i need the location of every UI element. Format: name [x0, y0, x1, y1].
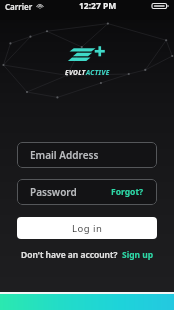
- staticText: Log in: [72, 222, 103, 235]
- button[interactable]: Sign up: [122, 249, 154, 261]
- button[interactable]: Email Address: [17, 142, 157, 168]
- button[interactable]: Password: [17, 179, 157, 205]
- other: Evolt Active logo: [67, 45, 109, 64]
- button[interactable]: Log in: [17, 217, 157, 239]
- staticText: Email Address: [30, 148, 99, 162]
- staticText: EVOLT: [65, 68, 86, 77]
- staticText: Forgot?: [111, 186, 144, 198]
- staticText: Don't have an account?: [21, 249, 118, 261]
- staticText: Carrier: [5, 1, 33, 12]
- staticText: ACTIVE: [86, 68, 110, 77]
- staticText: Sign up: [122, 249, 154, 261]
- staticText: Password: [30, 185, 77, 199]
- button[interactable]: Forgot?: [111, 186, 144, 198]
- staticText: 12:27 PM: [79, 0, 117, 12]
